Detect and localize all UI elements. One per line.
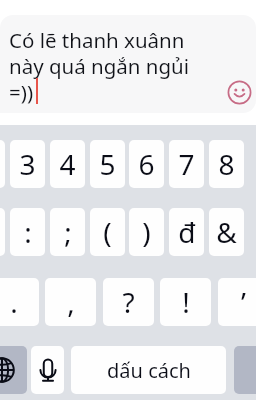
staticText: ) [142,213,151,251]
button[interactable]: 3 [10,140,45,188]
button[interactable]: More [234,346,256,394]
staticText: 3 [19,145,36,183]
staticText: =)) [9,78,34,106]
staticText: 5 [99,145,116,183]
staticText: ’ [241,283,246,321]
button[interactable]: Voice input [31,346,64,394]
button[interactable]: 4 [50,140,85,188]
button[interactable]: 8 [209,140,244,188]
button[interactable]: : [10,208,45,256]
button[interactable]: / [0,208,5,256]
staticText: 6 [138,145,155,183]
staticText: Có lẽ thanh xuânn [9,26,185,54]
staticText: . [10,283,18,321]
button[interactable]: ; [50,208,85,256]
button[interactable]: . [0,278,39,326]
staticText: ; [64,213,72,251]
staticText: dấu cách [107,357,191,384]
button[interactable]: ’ [218,278,256,326]
button[interactable]: 5 [90,140,125,188]
staticText: : [24,213,32,251]
button[interactable]: ? [103,278,154,326]
staticText: 8 [218,145,235,183]
button[interactable]: 7 [169,140,204,188]
staticText: ? [122,283,135,321]
button[interactable]: Emoji [226,79,253,106]
button[interactable]: dấu cách [71,346,226,394]
button[interactable]: , [45,278,96,326]
staticText: ( [103,213,112,251]
button[interactable]: đ [169,208,204,256]
button[interactable]: ) [129,208,164,256]
staticText: ! [182,283,190,321]
button[interactable]: Change keyboard [0,346,27,394]
staticText: đ [178,213,196,251]
button[interactable]: & [209,208,244,256]
staticText: , [67,283,75,321]
button[interactable]: ( [90,208,125,256]
staticText: này quá ngắn ngủi [9,52,190,80]
staticText: 4 [59,145,76,183]
staticText: 7 [178,145,195,183]
button[interactable]: 6 [129,140,164,188]
button[interactable]: ! [160,278,211,326]
button[interactable]: 2 [0,140,5,188]
staticText: & [216,213,237,251]
